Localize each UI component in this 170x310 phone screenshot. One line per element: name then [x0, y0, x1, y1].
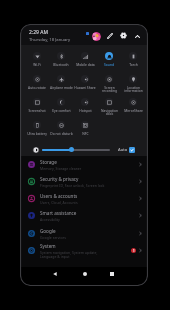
- staticText: Google: [40, 228, 56, 234]
- button[interactable]: Auto: [118, 147, 128, 153]
- button[interactable]: Edit: [106, 32, 114, 40]
- staticText: Hotspot: [79, 108, 92, 112]
- staticText: Sound: [104, 62, 114, 66]
- staticText: Screen recording: [102, 85, 117, 93]
- button[interactable]: Bluetooth: [49, 52, 73, 70]
- button[interactable]: Torch: [121, 52, 145, 70]
- button[interactable]: Google: [21, 225, 147, 242]
- button[interactable]: Hotspot: [73, 98, 97, 116]
- staticText: Mobile data: [76, 62, 95, 66]
- staticText: Auto-rotate: [28, 85, 46, 89]
- staticText: Fingerprint ID, Face unlock, Screen lock: [40, 183, 105, 188]
- staticText: Torch: [129, 62, 138, 66]
- staticText: NFC: [82, 131, 89, 135]
- staticText: Users & accounts: [40, 193, 78, 199]
- button[interactable]: Screenshot: [25, 98, 49, 116]
- button[interactable]: Smart assistance: [21, 207, 147, 224]
- staticText: Users, Cloud, Accounts: [40, 200, 78, 205]
- staticText: Do not disturb: [50, 131, 73, 135]
- staticText: Bluetooth: [53, 62, 69, 66]
- staticText: 1: [133, 249, 135, 253]
- button[interactable]: Eye comfort: [49, 98, 73, 116]
- staticText: System: [40, 243, 56, 249]
- staticText: 2:29 AM: [29, 29, 48, 36]
- staticText: Navigation dock: [101, 108, 118, 116]
- staticText: Auto: [118, 147, 128, 153]
- button[interactable]: Location information: [121, 75, 145, 93]
- button[interactable]: Auto brightness: [129, 147, 135, 153]
- button[interactable]: Screen recording: [97, 75, 121, 93]
- button[interactable]: Wi-Fi: [25, 52, 49, 70]
- button[interactable]: Storage: [21, 156, 147, 173]
- staticText: MirrorShare: [124, 108, 143, 112]
- button[interactable]: Recents: [105, 267, 119, 281]
- staticText: Accessibility: [40, 217, 60, 222]
- button[interactable]: System: [21, 242, 147, 259]
- staticText: Airplane mode: [50, 85, 73, 89]
- staticText: Security & privacy: [40, 176, 79, 182]
- button[interactable]: Airplane mode: [49, 75, 73, 93]
- staticText: Storage: [40, 159, 57, 165]
- button[interactable]: Mobile data: [73, 52, 97, 70]
- staticText: Screenshot: [28, 108, 46, 112]
- button[interactable]: Ultra battery: [25, 121, 49, 139]
- staticText: Memory, Storage cleaner: [40, 166, 82, 171]
- staticText: Google services: [40, 235, 66, 240]
- staticText: Huawei Share: [74, 85, 96, 89]
- button[interactable]: MirrorShare: [121, 98, 145, 116]
- staticText: Location information: [124, 85, 143, 93]
- button[interactable]: Do not disturb: [49, 121, 73, 139]
- button[interactable]: Navigation dock: [97, 98, 121, 116]
- button[interactable]: Auto-rotate: [25, 75, 49, 93]
- staticText: Ultra battery: [27, 131, 47, 135]
- button[interactable]: Users & accounts: [21, 190, 147, 207]
- button[interactable]: Back: [48, 267, 62, 281]
- staticText: Wi-Fi: [33, 62, 41, 66]
- button[interactable]: Security & privacy: [21, 173, 147, 190]
- staticText: System navigation, System update, Langua…: [40, 250, 98, 259]
- button[interactable]: Profile: [92, 32, 101, 41]
- button[interactable]: Sound: [97, 52, 121, 70]
- staticText: Smart assistance: [40, 210, 77, 216]
- button[interactable]: Home: [78, 267, 92, 281]
- button[interactable]: Collapse: [134, 33, 141, 40]
- button[interactable]: NFC: [73, 121, 97, 139]
- button[interactable]: Huawei Share: [73, 75, 97, 93]
- staticText: Eye comfort: [52, 108, 71, 112]
- button[interactable]: Settings: [120, 32, 127, 39]
- staticText: Thursday, 18 January: [29, 37, 71, 43]
